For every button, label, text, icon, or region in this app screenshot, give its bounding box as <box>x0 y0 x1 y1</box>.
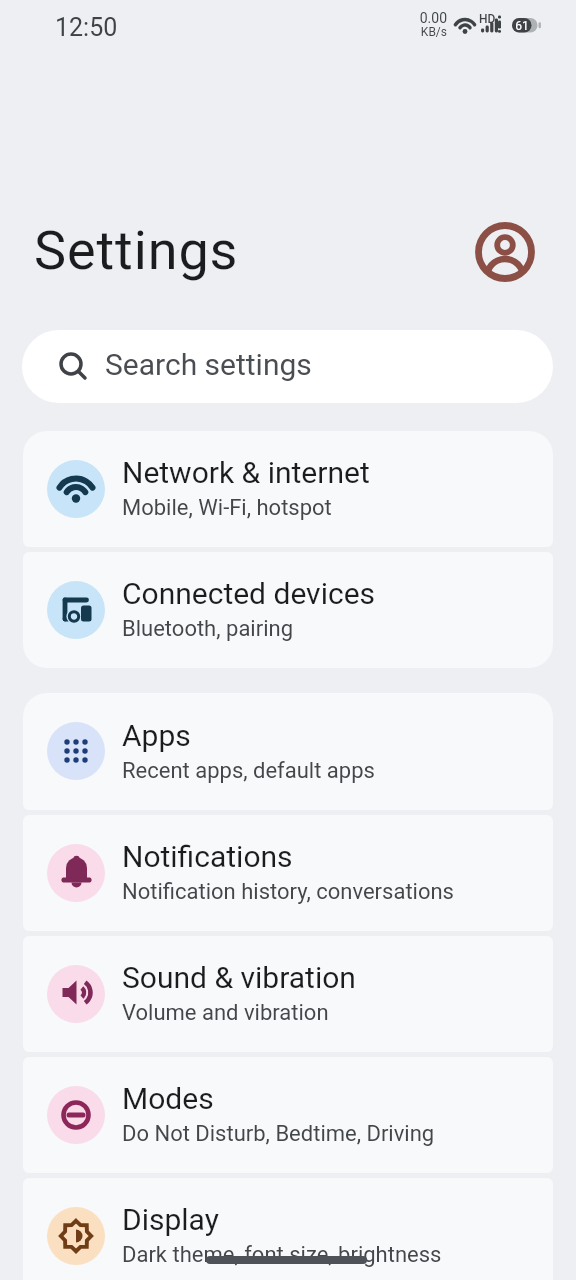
button[interactable]: Display <box>23 1178 553 1280</box>
staticText: Volume and vibration <box>122 1000 329 1026</box>
button[interactable]: Notifications <box>23 815 553 931</box>
staticText: Notifications <box>122 839 293 874</box>
staticText: Apps <box>122 718 191 753</box>
staticText: 0.00 <box>395 10 447 26</box>
staticText: Mobile, Wi-Fi, hotspot <box>122 495 332 521</box>
staticText: Connected devices <box>122 576 376 611</box>
staticText: KB/s <box>395 25 447 39</box>
button[interactable] <box>474 221 536 283</box>
staticText: 12:50 <box>55 13 118 42</box>
button[interactable]: Search settings <box>22 330 553 403</box>
button[interactable]: Connected devices <box>23 552 553 668</box>
staticText: Sound & vibration <box>122 960 356 995</box>
staticText: Network & internet <box>122 455 370 490</box>
staticText: Dark theme, font size, brightness <box>122 1242 442 1268</box>
staticText: Recent apps, default apps <box>122 758 375 784</box>
staticText: 61 <box>512 19 532 33</box>
button[interactable]: Network & internet <box>23 431 553 547</box>
staticText: Notification history, conversations <box>122 879 454 905</box>
button[interactable]: Apps <box>23 693 553 810</box>
button[interactable]: Sound & vibration <box>23 936 553 1052</box>
staticText: Modes <box>122 1081 214 1116</box>
staticText: Settings <box>34 219 239 282</box>
staticText: Display <box>122 1202 219 1237</box>
staticText: Bluetooth, pairing <box>122 616 294 642</box>
button[interactable]: Modes <box>23 1057 553 1173</box>
staticText: HD <box>479 12 496 26</box>
staticText: Do Not Disturb, Bedtime, Driving <box>122 1121 435 1147</box>
staticText: Search settings <box>105 347 312 382</box>
